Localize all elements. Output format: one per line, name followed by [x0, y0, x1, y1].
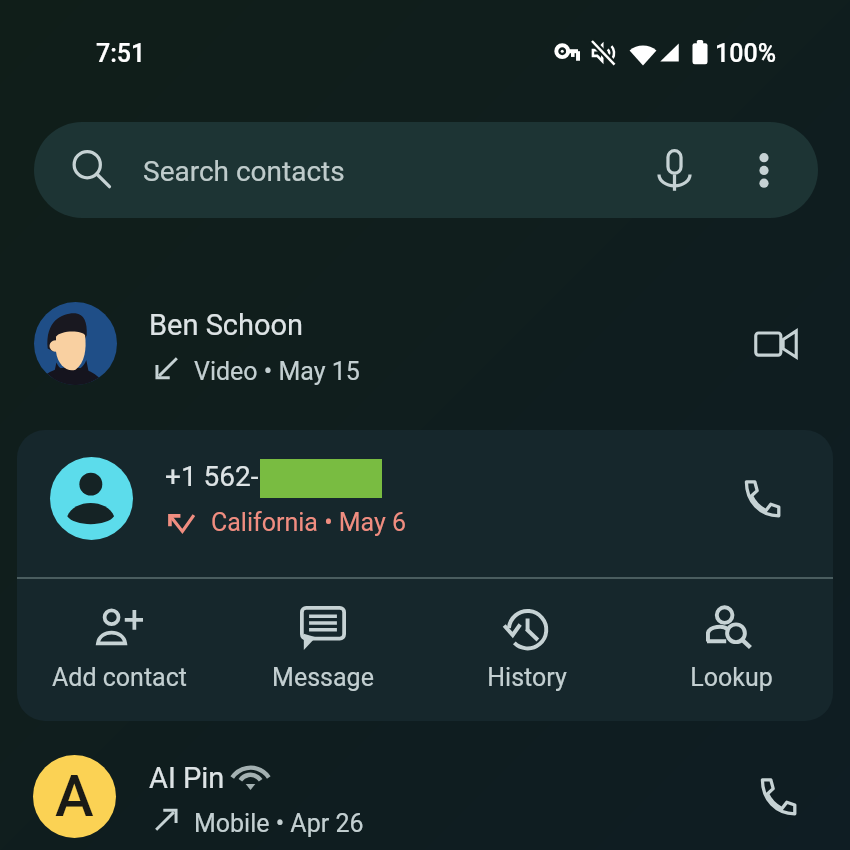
button[interactable]: Voice search [646, 141, 704, 199]
button[interactable]: Call [744, 765, 808, 829]
button[interactable]: Ben Schoon [0, 280, 850, 420]
button[interactable]: Search contacts [34, 122, 818, 218]
staticText: A [55, 762, 94, 830]
staticText: Mobile • Apr 26 [194, 809, 364, 838]
staticText: +1 562- [165, 460, 259, 493]
staticText: Search contacts [143, 155, 345, 188]
button[interactable]: Video call [744, 316, 808, 380]
staticText: Ben Schoon [149, 308, 304, 342]
button[interactable]: More options [735, 141, 793, 199]
button[interactable]: Call [728, 467, 792, 531]
button[interactable]: Add contact [17, 579, 221, 721]
staticText: Message [272, 663, 374, 692]
button[interactable]: A [0, 735, 850, 850]
staticText: Lookup [690, 663, 773, 692]
button[interactable]: Lookup [629, 579, 833, 721]
staticText: AI Pin [149, 761, 225, 795]
staticText: California • May 6 [211, 508, 407, 537]
staticText: Add contact [52, 663, 187, 692]
button[interactable]: History [425, 579, 629, 721]
staticText: Video • May 15 [194, 357, 360, 386]
button[interactable]: +1 562- [17, 430, 833, 577]
staticText: History [487, 663, 567, 692]
button[interactable]: Message [221, 579, 425, 721]
staticText: 7:51 [96, 39, 146, 68]
staticText: 100% [715, 39, 776, 68]
